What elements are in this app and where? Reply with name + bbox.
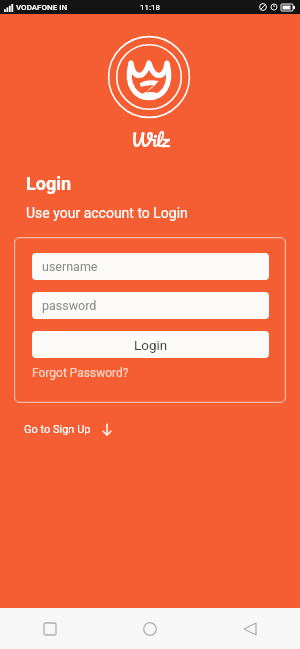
staticText: VODAFONE IN — [16, 3, 68, 12]
staticText: 11:18 — [140, 3, 160, 12]
button[interactable]: username — [32, 253, 269, 280]
staticText: Use your account to Login — [26, 205, 188, 221]
button[interactable]: Home — [100, 608, 200, 649]
staticText: username — [42, 259, 98, 274]
staticText: Wilz — [131, 124, 170, 155]
button[interactable]: Login — [32, 331, 269, 358]
other: Wilz logo — [108, 36, 190, 118]
button[interactable]: Go to Sign Up — [22, 421, 118, 439]
staticText: Login — [134, 337, 168, 353]
button[interactable]: Recent apps — [0, 608, 100, 649]
staticText: Go to Sign Up — [24, 423, 91, 436]
button[interactable]: password — [32, 292, 269, 319]
staticText: password — [42, 298, 97, 313]
staticText: Login — [26, 173, 72, 194]
button[interactable]: Forgot Password? — [32, 365, 129, 381]
button[interactable]: Back — [200, 608, 300, 649]
